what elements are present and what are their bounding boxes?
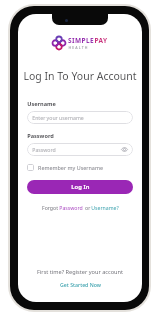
button[interactable]: Username?: [91, 204, 119, 211]
staticText: Password: [59, 204, 83, 211]
staticText: or: [83, 204, 91, 211]
button[interactable]: Password: [59, 204, 83, 211]
staticText: Log In: [71, 183, 90, 191]
button[interactable]: Enter your username: [27, 111, 133, 124]
staticText: Forgot: [41, 204, 59, 211]
staticText: Remember my Username: [38, 164, 103, 171]
staticText: Get Started Now: [60, 281, 101, 288]
button[interactable]: Get Started Now: [60, 281, 101, 288]
staticText: PAY: [94, 36, 108, 45]
staticText: Password: [27, 132, 54, 140]
staticText: First time? Register your account: [37, 268, 123, 276]
staticText: Password: [32, 146, 56, 153]
staticText: Enter your username: [32, 114, 84, 121]
button[interactable]: Password: [27, 143, 133, 156]
staticText: HEALTH: [68, 45, 89, 50]
button[interactable]: Remember my Username: [27, 163, 103, 172]
staticText: SIMPLE: [68, 36, 94, 45]
staticText: Username?: [91, 204, 119, 211]
button[interactable]: Show password: [121, 146, 128, 153]
staticText: Username: [27, 100, 56, 108]
staticText: Log In To Your Account: [23, 69, 137, 83]
button[interactable]: Log In: [27, 180, 133, 194]
